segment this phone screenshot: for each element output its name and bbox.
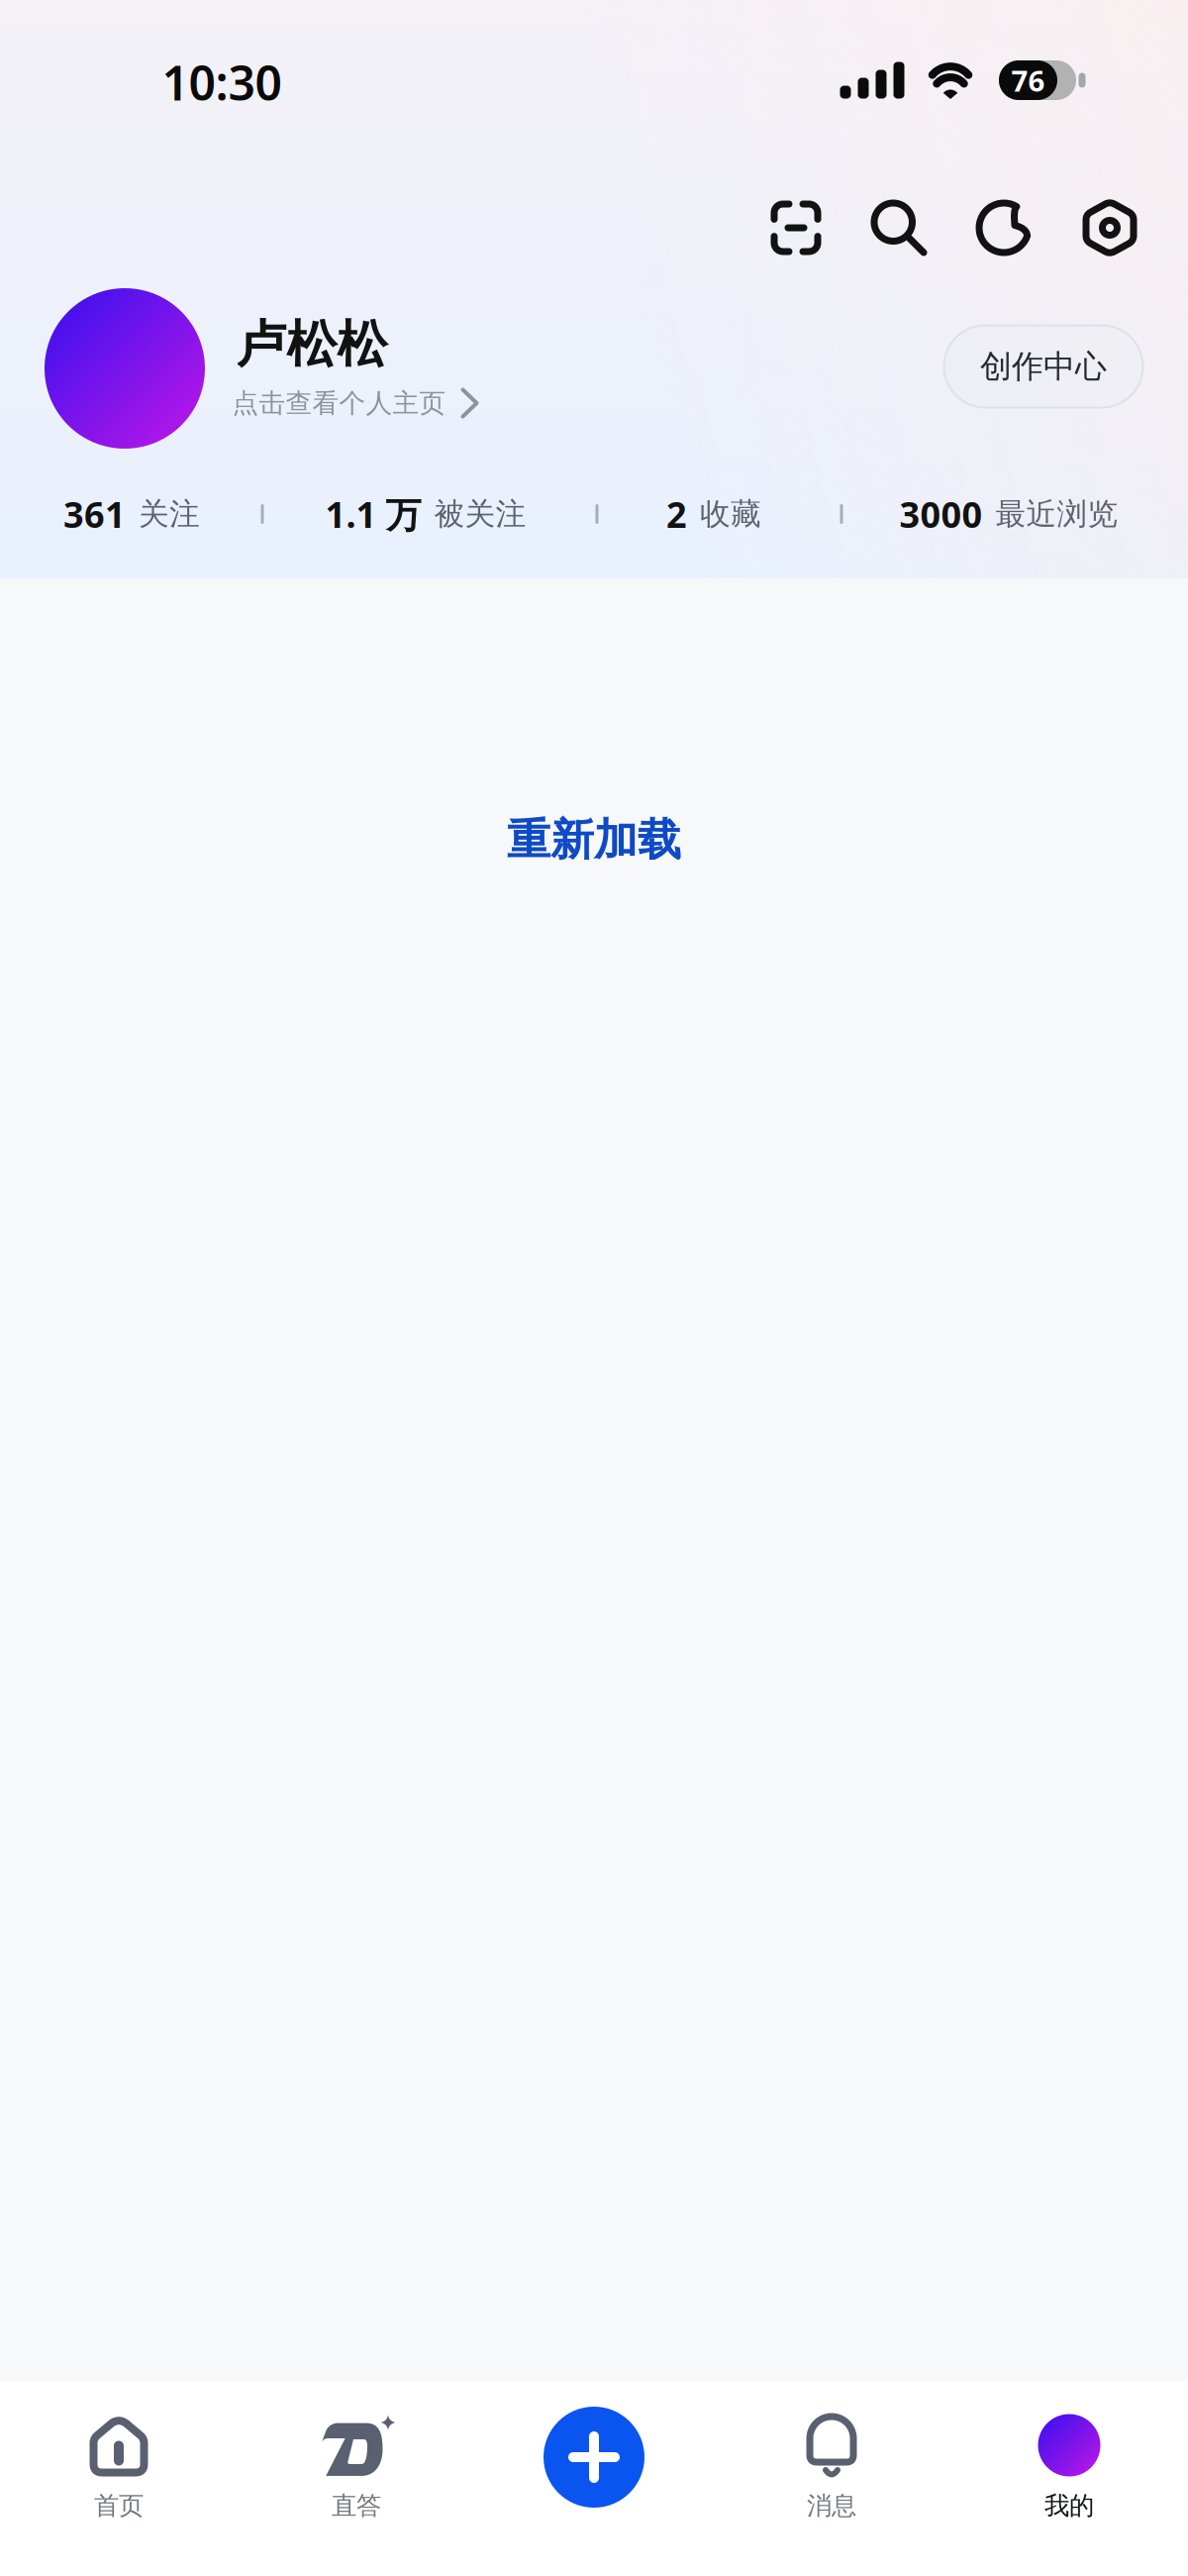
staticText: 收藏 bbox=[700, 495, 761, 533]
button[interactable]: Search bbox=[851, 180, 946, 275]
staticText: 被关注 bbox=[434, 495, 526, 533]
button[interactable]: 361 bbox=[63, 482, 200, 546]
staticText: 卢松松 bbox=[236, 314, 388, 375]
button[interactable]: 直答 bbox=[238, 2381, 475, 2576]
staticText: 361 bbox=[63, 490, 126, 538]
button[interactable]: 卢松松 bbox=[0, 0, 693, 578]
staticText: 最近浏览 bbox=[995, 495, 1118, 533]
staticText: 10:30 bbox=[162, 51, 282, 114]
staticText: 76 bbox=[1011, 61, 1045, 100]
button[interactable]: 2 bbox=[666, 482, 761, 546]
button[interactable]: Dark mode bbox=[956, 180, 1051, 275]
button[interactable]: 创作中心 bbox=[944, 325, 1143, 408]
button[interactable]: 消息 bbox=[713, 2381, 950, 2576]
button[interactable]: 3000 bbox=[899, 482, 1118, 546]
staticText: 点击查看个人主页 bbox=[232, 387, 446, 419]
button[interactable]: 我的 bbox=[950, 2381, 1188, 2576]
staticText: 2 bbox=[666, 490, 687, 538]
button[interactable]: 1.1 万 bbox=[325, 482, 526, 546]
button[interactable]: Settings bbox=[1062, 180, 1157, 275]
staticText: 3000 bbox=[899, 490, 983, 538]
staticText: 创作中心 bbox=[980, 347, 1107, 386]
button[interactable]: 首页 bbox=[0, 2381, 238, 2576]
button[interactable]: 重新加载 bbox=[436, 792, 752, 887]
button[interactable]: Scan code bbox=[748, 180, 843, 275]
staticText: 我的 bbox=[1044, 2490, 1094, 2521]
staticText: 1.1 万 bbox=[325, 490, 421, 538]
staticText: 直答 bbox=[332, 2490, 381, 2521]
button[interactable]: Create bbox=[475, 2381, 713, 2576]
staticText: 首页 bbox=[94, 2490, 144, 2521]
staticText: 消息 bbox=[807, 2490, 856, 2521]
staticText: 关注 bbox=[139, 495, 200, 533]
staticText: 重新加载 bbox=[507, 813, 681, 867]
